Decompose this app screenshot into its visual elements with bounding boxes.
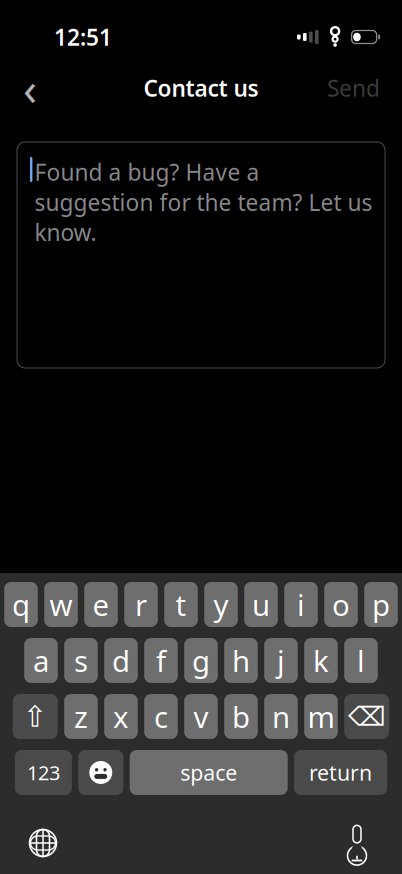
button[interactable]: b — [224, 694, 258, 739]
button[interactable]: s — [64, 638, 98, 683]
staticText: b — [232, 697, 250, 736]
button[interactable]: d — [104, 638, 138, 683]
button[interactable]: q — [4, 582, 38, 627]
staticText: Found a bug? Have a suggestion for the t… — [34, 157, 372, 247]
button[interactable]: Next keyboard — [19, 819, 67, 867]
button[interactable]: c — [144, 694, 178, 739]
button[interactable]: v — [184, 694, 218, 739]
button[interactable]: z — [64, 694, 98, 739]
button[interactable]: 123 — [15, 750, 72, 795]
staticText: t — [175, 585, 186, 624]
button[interactable]: j — [264, 638, 298, 683]
button[interactable]: y — [204, 582, 238, 627]
staticText: k — [313, 641, 329, 680]
button[interactable]: Found a bug? Have a suggestion for the t… — [17, 142, 385, 368]
staticText: e — [92, 585, 109, 624]
button[interactable]: l — [344, 638, 378, 683]
button[interactable]: k — [304, 638, 338, 683]
button[interactable]: f — [144, 638, 178, 683]
staticText: ⇧ — [23, 700, 48, 733]
staticText: ⌫ — [348, 701, 386, 732]
staticText: 123 — [27, 759, 60, 786]
staticText: c — [154, 697, 168, 736]
staticText: u — [252, 585, 270, 624]
button[interactable]: Back — [6, 65, 54, 111]
staticText: y — [213, 585, 228, 624]
staticText: r — [135, 585, 147, 624]
button[interactable]: w — [44, 582, 78, 627]
staticText: o — [332, 585, 350, 624]
staticText: f — [156, 641, 166, 680]
staticText: return — [309, 758, 372, 787]
staticText: ‹ — [23, 58, 37, 118]
staticText: s — [74, 641, 88, 680]
button[interactable]: n — [264, 694, 298, 739]
staticText: h — [232, 641, 250, 680]
staticText: p — [372, 585, 390, 624]
staticText: n — [272, 697, 290, 736]
staticText: Contact us — [143, 73, 258, 103]
button[interactable]: t — [164, 582, 198, 627]
staticText: v — [193, 697, 208, 736]
button[interactable]: Shift — [13, 694, 58, 739]
staticText: i — [297, 585, 305, 624]
button[interactable]: o — [324, 582, 358, 627]
staticText: q — [12, 585, 30, 624]
button[interactable]: r — [124, 582, 158, 627]
button[interactable]: m — [304, 694, 338, 739]
button[interactable]: a — [24, 638, 58, 683]
staticText: l — [357, 641, 365, 680]
button[interactable]: p — [364, 582, 398, 627]
staticText: j — [277, 641, 285, 680]
staticText: 12:51 — [54, 22, 112, 52]
staticText: space — [180, 758, 237, 787]
button[interactable]: return — [294, 750, 387, 795]
button[interactable]: Emoji — [78, 750, 123, 795]
button[interactable]: h — [224, 638, 258, 683]
button[interactable]: x — [104, 694, 138, 739]
button[interactable]: e — [84, 582, 118, 627]
staticText: d — [112, 641, 130, 680]
button[interactable]: Send — [319, 65, 388, 111]
staticText: x — [113, 697, 129, 736]
button[interactable]: space — [130, 750, 288, 795]
button[interactable]: Delete — [344, 694, 389, 739]
staticText: m — [307, 697, 334, 736]
staticText: Send — [327, 73, 380, 103]
staticText: g — [192, 641, 210, 680]
button[interactable]: Dictation — [333, 819, 381, 867]
staticText: z — [74, 697, 88, 736]
staticText: a — [33, 641, 49, 680]
button[interactable]: u — [244, 582, 278, 627]
button[interactable]: g — [184, 638, 218, 683]
button[interactable]: i — [284, 582, 318, 627]
staticText: w — [49, 585, 72, 624]
